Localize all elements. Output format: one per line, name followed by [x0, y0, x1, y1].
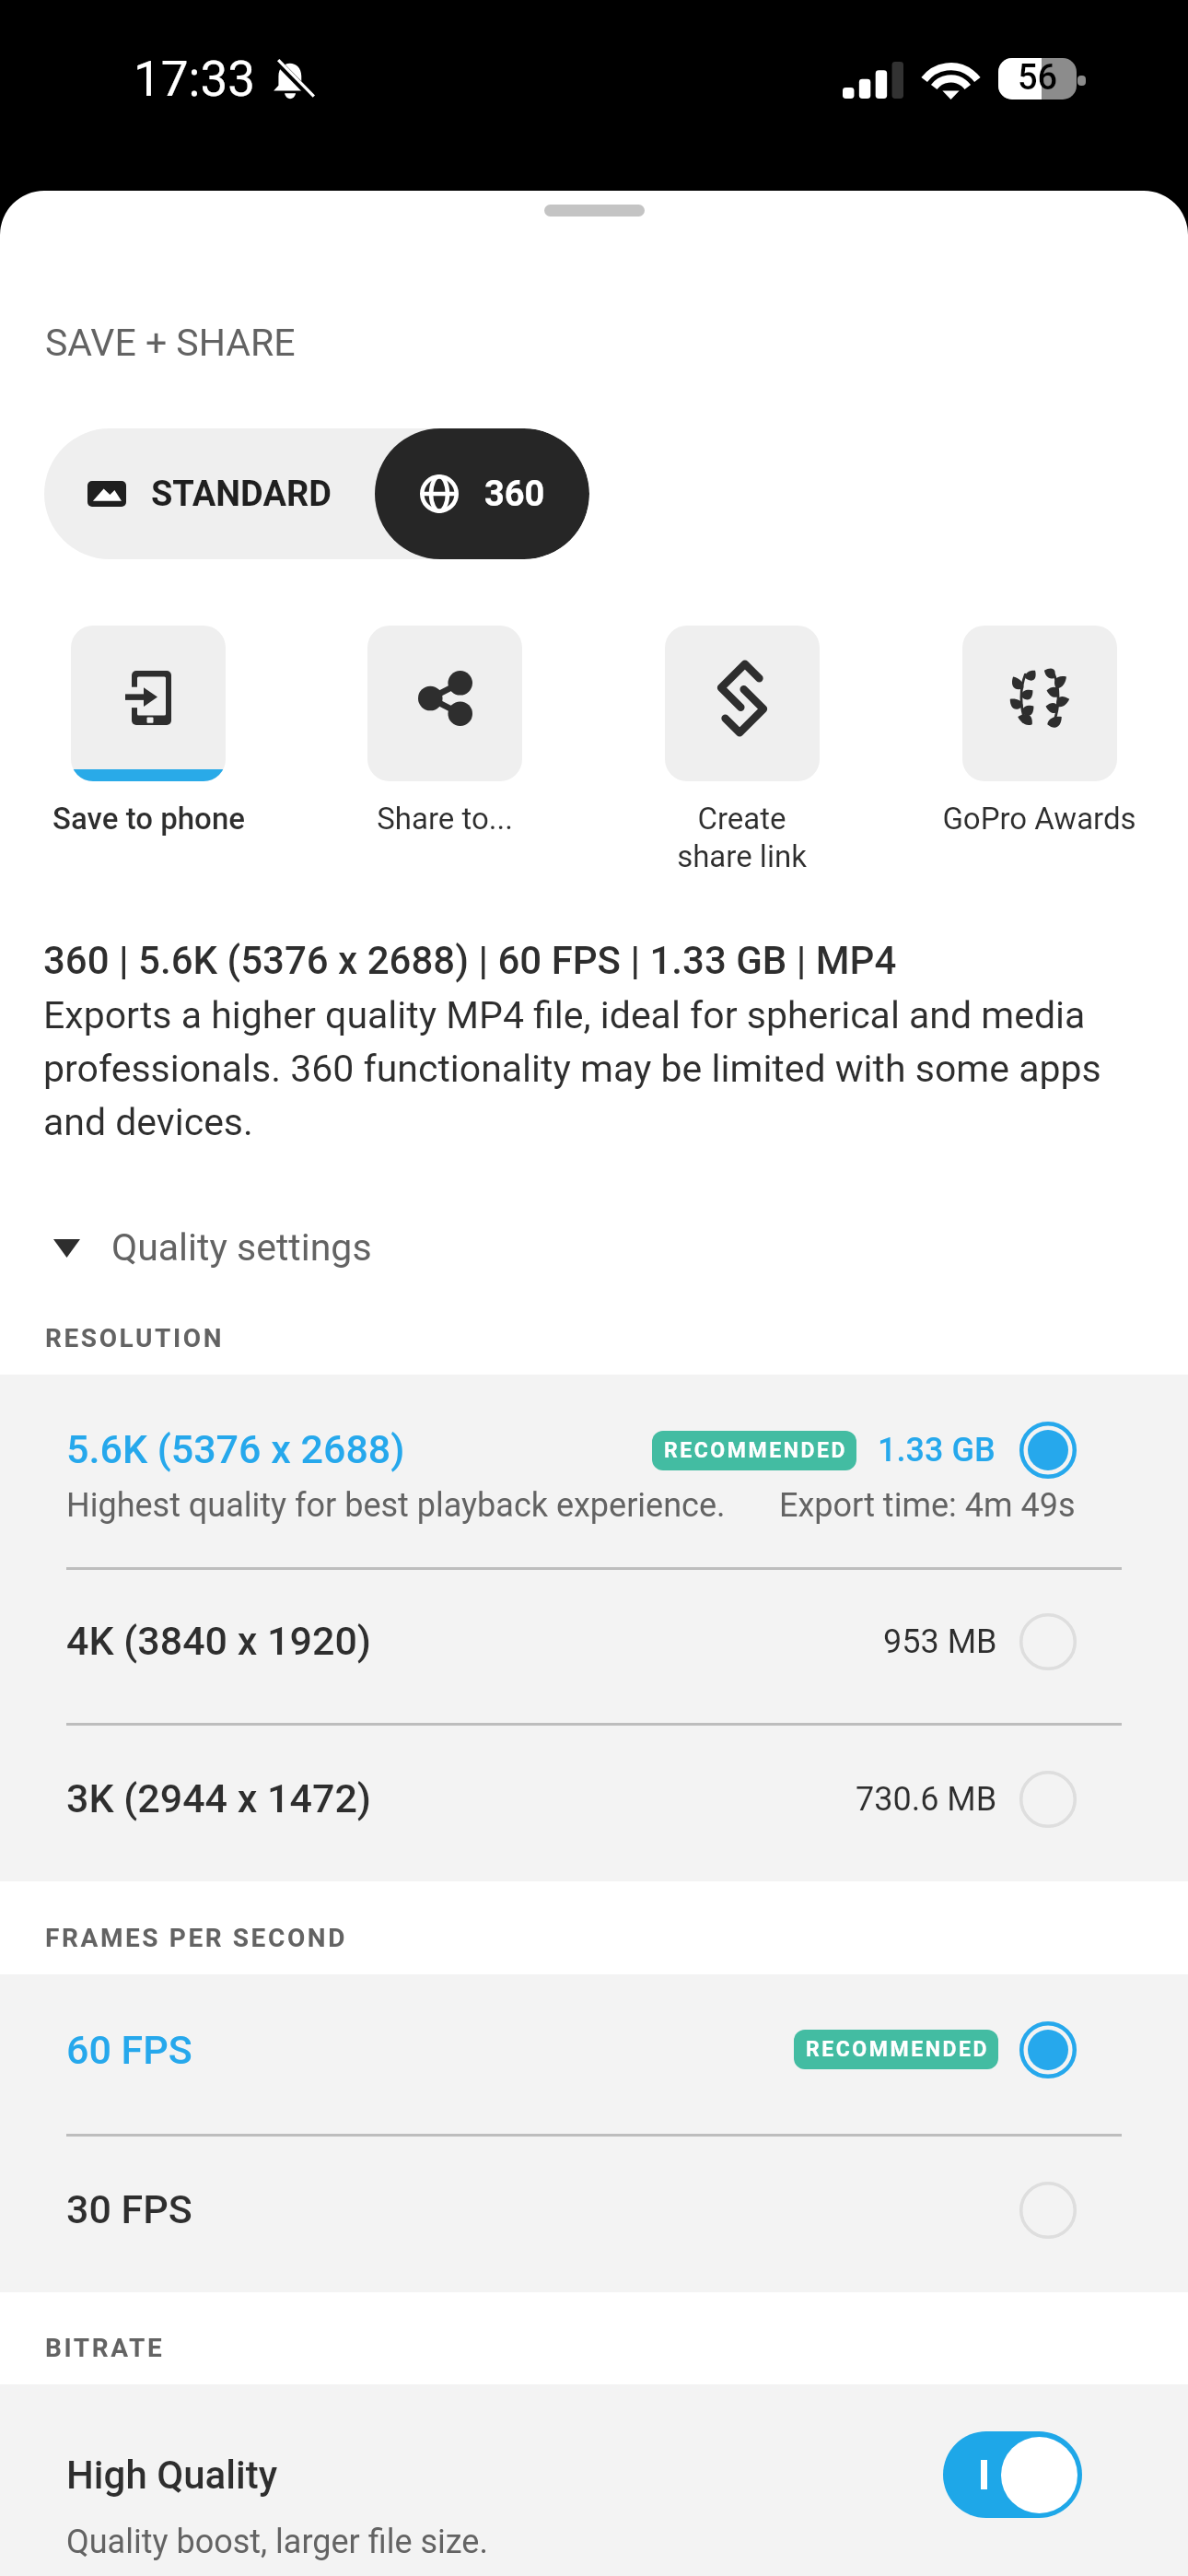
button[interactable]: GoPro Awards — [891, 626, 1188, 837]
button[interactable]: Create share link — [593, 626, 891, 874]
button[interactable]: 3K (2944 x 1472) — [0, 1726, 1188, 1881]
staticText: 1.33 GB — [878, 1431, 996, 1469]
staticText: Highest quality for best playback experi… — [66, 1486, 726, 1525]
staticText: BITRATE — [45, 2333, 165, 2363]
button[interactable]: Quality settings — [0, 1222, 1188, 1273]
staticText: 5.6K (5376 x 2688) — [66, 1426, 405, 1472]
staticText: Quality boost, larger file size. — [66, 2523, 488, 2561]
staticText: RECOMMENDED — [806, 2037, 989, 2062]
staticText: 30 FPS — [66, 2186, 192, 2232]
button[interactable]: High Quality — [0, 2384, 1188, 2576]
staticText: 3K (2944 x 1472) — [66, 1775, 372, 1821]
staticText: Create share link — [677, 801, 807, 874]
staticText: RECOMMENDED — [664, 1438, 847, 1463]
other: Create share link — [716, 672, 769, 725]
button[interactable]: STANDARD — [44, 428, 375, 559]
staticText: FRAMES PER SECOND — [45, 1923, 348, 1953]
staticText: 730.6 MB — [856, 1780, 997, 1819]
button[interactable]: Share to — [297, 626, 593, 837]
button[interactable]: Save to phone — [0, 626, 297, 837]
staticText: RESOLUTION — [45, 1323, 225, 1353]
staticText: Quality settings — [111, 1225, 372, 1270]
staticText: Share to... — [377, 801, 513, 837]
button[interactable]: 30 FPS — [0, 2137, 1188, 2292]
button[interactable]: 5.6K (5376 x 2688) — [0, 1375, 1188, 1567]
staticText: 360 | 5.6K (5376 x 2688) | 60 FPS | 1.33… — [43, 938, 897, 983]
staticText: 60 FPS — [66, 2027, 192, 2073]
staticText: GoPro Awards — [942, 801, 1136, 837]
staticText: High Quality — [66, 2453, 278, 2498]
staticText: 360 — [484, 474, 545, 515]
staticText: SAVE + SHARE — [45, 321, 296, 365]
other: Share to — [418, 671, 472, 726]
staticText: 4K (3840 x 1920) — [66, 1618, 372, 1664]
staticText: Export time: 4m 49s — [779, 1486, 1076, 1525]
staticText: 17:33 — [134, 51, 255, 108]
button[interactable]: 360 — [375, 428, 589, 559]
other: GoPro Awards — [1009, 672, 1070, 725]
other: Save to phone — [125, 671, 171, 725]
button[interactable]: 60 FPS — [0, 1974, 1188, 2134]
staticText: Save to phone — [52, 801, 245, 837]
staticText: 56 — [1018, 58, 1058, 99]
staticText: Exports a higher quality MP4 file, ideal… — [43, 993, 1148, 1144]
staticText: 953 MB — [883, 1622, 997, 1661]
button[interactable]: 4K (3840 x 1920) — [0, 1570, 1188, 1723]
staticText: STANDARD — [151, 474, 332, 515]
